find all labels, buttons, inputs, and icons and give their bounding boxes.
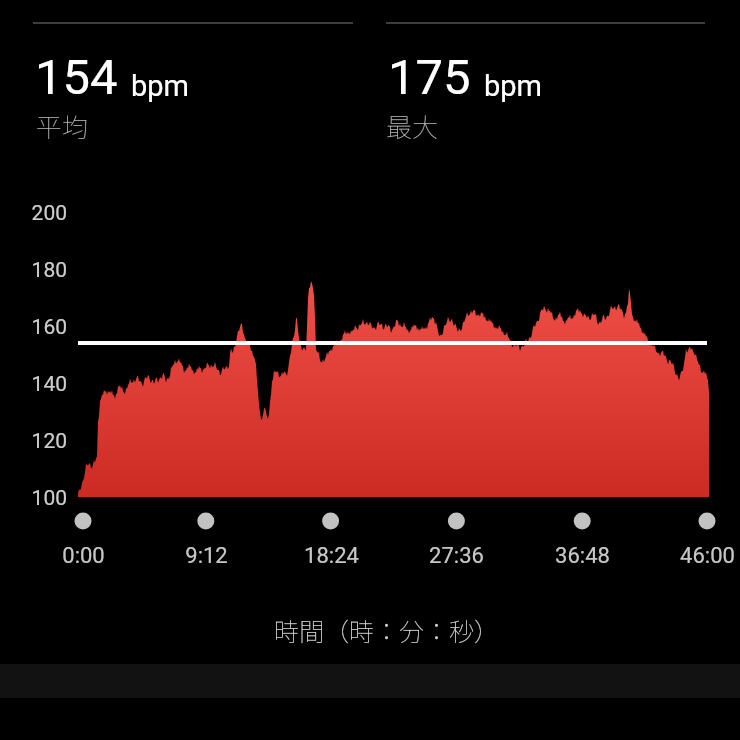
staticText: 160 [31,315,67,340]
staticText: 120 [31,429,67,454]
staticText: 175 [388,49,471,106]
staticText: 36:48 [555,543,610,569]
staticText: bpm [484,69,542,103]
staticText: 100 [31,486,67,511]
staticText: 140 [31,372,67,397]
staticText: 180 [31,258,67,283]
staticText: 154 [35,49,118,106]
staticText: 18:24 [304,543,359,569]
staticText: 0:00 [62,543,105,569]
staticText: 最大 [386,107,439,145]
staticText: bpm [131,69,189,103]
staticText: 時間（時：分：秒） [274,612,500,648]
staticText: 200 [31,201,67,226]
staticText: 平均 [36,107,89,145]
staticText: 27:36 [429,543,484,569]
staticText: 9:12 [185,543,228,569]
button[interactable]: 154 [33,24,353,150]
button[interactable]: 175 [386,24,705,150]
staticText: 46:00 [680,543,735,569]
